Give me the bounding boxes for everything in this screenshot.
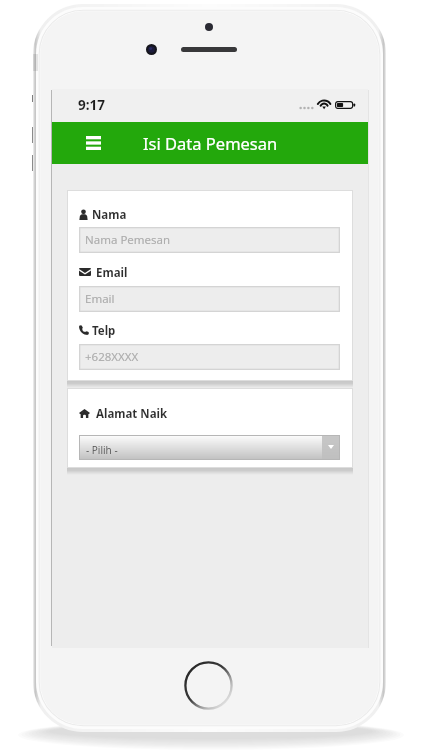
button[interactable]: Alamat Naik xyxy=(79,407,279,422)
button[interactable]: +628XXXX xyxy=(79,344,340,370)
button[interactable]: Email xyxy=(79,266,279,281)
staticText: Email xyxy=(96,265,128,280)
button[interactable]: Nama xyxy=(79,208,279,223)
staticText: Nama xyxy=(92,207,127,222)
staticText: Telp xyxy=(92,323,116,338)
button[interactable]: - Pilih - xyxy=(80,436,339,459)
staticText: Isi Data Pemesan xyxy=(143,132,278,154)
staticText: Nama Pemesan xyxy=(85,232,171,248)
staticText: +628XXXX xyxy=(85,349,139,365)
button[interactable]: Home xyxy=(184,661,233,710)
button[interactable]: Nama Pemesan xyxy=(79,227,340,253)
staticText: - Pilih - xyxy=(86,443,118,457)
staticText: Alamat Naik xyxy=(96,406,168,421)
staticText: Email xyxy=(85,291,115,307)
button[interactable]: Menu xyxy=(86,136,101,150)
staticText: 9:17 xyxy=(78,96,105,114)
button[interactable]: Email xyxy=(79,286,340,312)
button[interactable]: Telp xyxy=(79,324,279,339)
